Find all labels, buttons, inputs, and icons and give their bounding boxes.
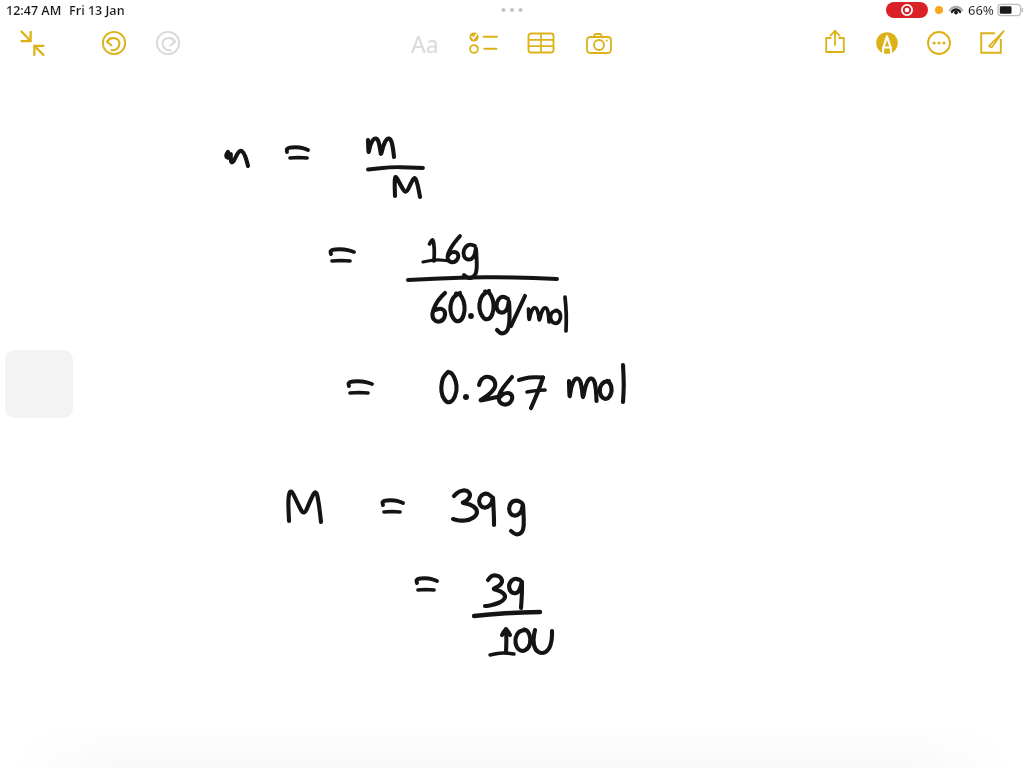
button[interactable]: Text format bbox=[407, 25, 443, 61]
button[interactable]: Redo bbox=[150, 25, 186, 61]
button[interactable]: Camera bbox=[581, 25, 617, 61]
button[interactable]: Markup bbox=[869, 25, 905, 61]
button[interactable]: Screen recording bbox=[886, 2, 928, 18]
staticText: Aa bbox=[411, 28, 439, 59]
button[interactable]: Collapse bbox=[14, 25, 50, 61]
staticText: Fri 13 Jan bbox=[69, 2, 125, 19]
staticText: 66% bbox=[968, 1, 994, 19]
button[interactable]: Undo bbox=[96, 25, 132, 61]
button[interactable]: Table bbox=[523, 25, 559, 61]
button[interactable]: Checklist bbox=[465, 25, 501, 61]
staticText: 12:47 AM bbox=[6, 2, 62, 19]
button[interactable]: New note bbox=[973, 25, 1009, 61]
button[interactable]: More bbox=[921, 25, 957, 61]
button[interactable]: Share bbox=[817, 25, 853, 61]
